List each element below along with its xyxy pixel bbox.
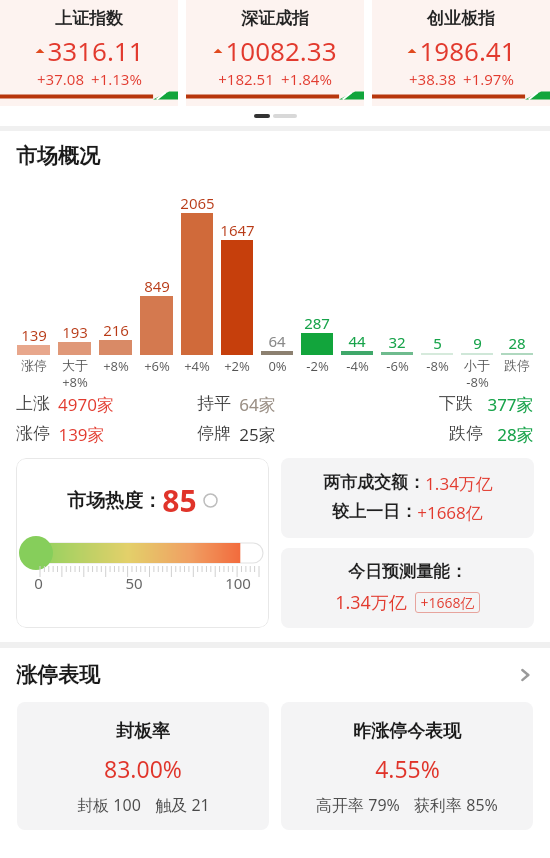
staticText: 849 xyxy=(144,276,170,296)
staticText: -8% xyxy=(426,357,449,375)
staticText: 1.34万亿 xyxy=(335,590,407,615)
staticText: 获利率 85% xyxy=(414,794,498,816)
staticText: 287 xyxy=(304,313,330,333)
button[interactable]: 封板率 xyxy=(17,702,269,830)
staticText: +4% xyxy=(184,357,210,375)
staticText: 1986.41 xyxy=(419,33,516,68)
staticText: 高开率 79% xyxy=(316,794,400,816)
staticText: 停牌 xyxy=(197,423,231,444)
staticText: +6% xyxy=(144,357,170,375)
staticText: 大于 xyxy=(62,357,88,373)
button[interactable]: 今日预测量能： xyxy=(281,548,534,628)
staticText: 0 xyxy=(34,573,43,593)
staticText: 83.00% xyxy=(104,753,182,784)
staticText: +38.38 xyxy=(409,69,456,89)
staticText: +1.13% xyxy=(91,69,142,89)
staticText: 139家 xyxy=(58,423,105,446)
staticText: 上涨 xyxy=(16,393,50,414)
staticText: +2% xyxy=(224,357,250,375)
staticText: 涨停 xyxy=(21,357,47,373)
button[interactable]: 市场热度： xyxy=(16,458,269,628)
staticText: 28 xyxy=(508,333,526,353)
staticText: 深证成指 xyxy=(241,8,309,29)
staticText: 封板率 xyxy=(116,720,170,743)
staticText: +8% xyxy=(103,357,129,375)
staticText: 1.34万亿 xyxy=(425,472,493,495)
staticText: 持平 xyxy=(197,393,231,414)
staticText: 9 xyxy=(473,333,482,353)
staticText: 10082.33 xyxy=(225,33,337,68)
staticText: 25家 xyxy=(239,423,276,446)
button[interactable]: 创业板指 xyxy=(372,0,550,106)
staticText: 0% xyxy=(268,357,287,375)
other: 帮助 xyxy=(203,493,218,508)
staticText: 市场概况 xyxy=(16,143,100,169)
staticText: 193 xyxy=(62,322,88,342)
staticText: 上证指数 xyxy=(55,8,123,29)
staticText: 小于 xyxy=(464,357,490,373)
staticText: 32 xyxy=(388,332,406,352)
staticText: 涨停表现 xyxy=(16,662,100,688)
staticText: 涨停 xyxy=(16,423,50,444)
staticText: 今日预测量能： xyxy=(348,561,467,582)
staticText: +182.51 xyxy=(218,69,274,89)
staticText: 5 xyxy=(433,333,442,353)
staticText: 跌停 xyxy=(449,423,483,444)
staticText: 3316.11 xyxy=(47,33,144,68)
staticText: 创业板指 xyxy=(427,8,495,29)
button[interactable]: 昨涨停今表现 xyxy=(281,702,533,830)
staticText: +1.97% xyxy=(463,69,514,89)
staticText: 377家 xyxy=(487,393,534,416)
staticText: +1668亿 xyxy=(420,593,475,612)
button[interactable]: 上证指数 xyxy=(0,0,178,106)
button[interactable]: 深证成指 xyxy=(186,0,364,106)
staticText: 28家 xyxy=(497,423,534,446)
other: 更多 xyxy=(516,666,534,684)
staticText: 较上一日： xyxy=(332,501,417,522)
staticText: -2% xyxy=(306,357,329,375)
staticText: 市场热度： xyxy=(67,489,162,513)
staticText: 100 xyxy=(225,573,251,593)
staticText: +1668亿 xyxy=(417,501,483,524)
staticText: 下跌 xyxy=(439,393,473,414)
staticText: 139 xyxy=(21,325,47,345)
staticText: 触及 21 xyxy=(155,794,210,816)
staticText: 50 xyxy=(125,573,143,593)
staticText: -4% xyxy=(346,357,369,375)
staticText: 64家 xyxy=(239,393,276,416)
staticText: 昨涨停今表现 xyxy=(353,720,461,743)
staticText: 两市成交额： xyxy=(323,472,425,493)
staticText: 4.55% xyxy=(375,753,440,784)
staticText: 封板 100 xyxy=(77,794,141,816)
staticText: +8% xyxy=(62,373,88,389)
staticText: 85 xyxy=(162,480,197,521)
staticText: 4970家 xyxy=(58,393,114,416)
staticText: -6% xyxy=(386,357,409,375)
staticText: 跌停 xyxy=(504,357,530,373)
staticText: +1.84% xyxy=(281,69,332,89)
staticText: +37.08 xyxy=(37,69,84,89)
staticText: 216 xyxy=(103,320,129,340)
staticText: 2065 xyxy=(180,193,215,213)
button[interactable]: 两市成交额： xyxy=(281,458,534,538)
staticText: 44 xyxy=(348,331,366,351)
staticText: -8% xyxy=(466,373,489,389)
button[interactable]: 涨停表现 xyxy=(0,658,550,692)
staticText: 64 xyxy=(268,331,286,351)
staticText: 1647 xyxy=(220,220,255,240)
